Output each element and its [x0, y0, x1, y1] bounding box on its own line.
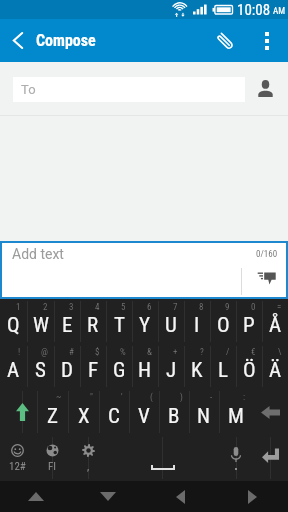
staticText: R: [87, 313, 99, 338]
staticText: P: [243, 313, 255, 338]
staticText: J: [166, 358, 177, 383]
button[interactable]: -: [189, 389, 219, 435]
button[interactable]: ": [68, 389, 99, 435]
button[interactable]: 6: [132, 299, 158, 344]
button[interactable]: &: [132, 344, 158, 389]
button[interactable]: ): [159, 389, 189, 435]
staticText: %: [120, 347, 126, 358]
staticText: (: [150, 392, 153, 403]
staticText: B: [168, 404, 180, 429]
staticText: 9: [225, 302, 230, 313]
staticText: N: [197, 404, 211, 429]
button[interactable]: $: [80, 344, 106, 389]
staticText: A: [7, 358, 20, 383]
button[interactable]: Back: [144, 481, 216, 512]
staticText: 5: [121, 302, 126, 313]
staticText: $: [95, 347, 100, 358]
staticText: C: [108, 404, 120, 429]
button[interactable]: Attach: [204, 19, 246, 62]
button[interactable]: #: [54, 344, 80, 389]
button[interactable]: €: [236, 344, 262, 389]
button[interactable]: Forward: [216, 481, 288, 512]
staticText: H: [138, 358, 152, 383]
button[interactable]: %: [106, 344, 132, 389]
staticText: T: [114, 313, 125, 338]
button[interactable]: Space: [105, 435, 220, 481]
staticText: ': [121, 392, 123, 403]
button[interactable]: :: [219, 389, 252, 435]
button[interactable]: To: [13, 77, 245, 102]
button[interactable]: 7: [158, 299, 184, 344]
button[interactable]: @: [27, 344, 54, 389]
button[interactable]: (: [129, 389, 159, 435]
staticText: Add text: [12, 246, 64, 262]
staticText: 0/160: [256, 249, 278, 260]
staticText: Y: [139, 313, 151, 338]
staticText: 12#: [9, 460, 26, 473]
button[interactable]: 1: [0, 299, 27, 344]
staticText: ": [90, 392, 93, 403]
staticText: +: [173, 347, 178, 358]
button[interactable]: 4: [80, 299, 106, 344]
button[interactable]: Back: [0, 19, 36, 62]
staticText: !: [18, 347, 21, 358]
button[interactable]: ~: [37, 389, 68, 435]
staticText: :: [243, 392, 246, 403]
staticText: €: [251, 347, 256, 358]
button[interactable]: Change language: [34, 435, 71, 481]
staticText: /: [226, 347, 230, 358]
button[interactable]: 2: [27, 299, 54, 344]
button[interactable]: Enter: [252, 435, 288, 481]
button[interactable]: 9: [210, 299, 236, 344]
staticText: O: [217, 313, 230, 338]
button[interactable]: Up: [0, 481, 72, 512]
staticText: 0: [251, 302, 256, 313]
button[interactable]: \: [262, 344, 288, 389]
staticText: 6: [147, 302, 152, 313]
button[interactable]: Down: [72, 481, 144, 512]
button[interactable]: More options: [246, 19, 288, 62]
staticText: FI: [48, 460, 57, 473]
staticText: U: [165, 313, 177, 338]
staticText: I: [194, 313, 200, 338]
staticText: -: [210, 392, 213, 403]
button[interactable]: +: [158, 344, 184, 389]
button[interactable]: =: [262, 299, 288, 344]
staticText: 7: [173, 302, 178, 313]
button[interactable]: Send message: [241, 265, 286, 297]
button[interactable]: 3: [54, 299, 80, 344]
button[interactable]: Pick contact: [245, 62, 288, 116]
staticText: 8: [199, 302, 204, 313]
button[interactable]: 8: [184, 299, 210, 344]
staticText: ,: [87, 460, 90, 473]
staticText: 4: [95, 302, 100, 313]
button[interactable]: 5: [106, 299, 132, 344]
button[interactable]: ': [99, 389, 129, 435]
staticText: 3: [69, 302, 74, 313]
staticText: AM: [273, 6, 285, 17]
staticText: W: [33, 313, 49, 338]
staticText: \: [278, 347, 282, 358]
button[interactable]: Emoji and numbers: [0, 435, 34, 481]
staticText: 1: [16, 302, 21, 313]
button[interactable]: 0: [236, 299, 262, 344]
staticText: Ä: [269, 358, 282, 383]
staticText: G: [113, 358, 126, 383]
staticText: @: [41, 347, 48, 358]
button[interactable]: Shift: [8, 389, 37, 435]
staticText: L: [218, 358, 228, 383]
button[interactable]: /: [210, 344, 236, 389]
staticText: F: [88, 358, 99, 383]
button[interactable]: Backspace: [252, 389, 288, 435]
staticText: D: [61, 358, 73, 383]
button[interactable]: Voice input: [220, 435, 252, 481]
button[interactable]: Settings: [71, 435, 105, 481]
staticText: Z: [47, 404, 58, 429]
button[interactable]: !: [0, 344, 27, 389]
button[interactable]: ?: [184, 344, 210, 389]
staticText: &: [147, 347, 152, 358]
staticText: E: [62, 313, 73, 338]
staticText: 10:08: [237, 1, 271, 19]
staticText: S: [35, 358, 46, 383]
